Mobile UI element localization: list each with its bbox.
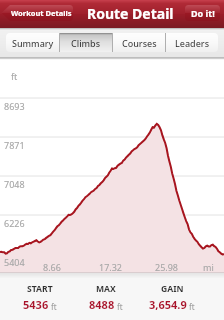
staticText: Do it! bbox=[191, 7, 215, 19]
staticText: mi bbox=[203, 261, 214, 273]
button[interactable]: MAX bbox=[73, 283, 139, 312]
staticText: Climbs bbox=[71, 37, 101, 49]
staticText: 25.98 bbox=[155, 261, 179, 273]
staticText: Leaders bbox=[175, 37, 210, 49]
staticText: GAIN bbox=[161, 283, 184, 295]
staticText: 8488 bbox=[89, 297, 115, 312]
staticText: 8.66 bbox=[43, 261, 61, 273]
staticText: Route Detail bbox=[87, 4, 174, 23]
button[interactable]: Summary bbox=[6, 33, 59, 52]
button[interactable]: Leaders bbox=[166, 33, 218, 52]
staticText: ft bbox=[115, 301, 123, 312]
button[interactable]: GAIN bbox=[139, 283, 205, 312]
staticText: 7871 bbox=[4, 139, 25, 151]
staticText: ft bbox=[11, 70, 18, 82]
button[interactable]: START bbox=[6, 283, 73, 312]
staticText: 5404 bbox=[4, 256, 25, 268]
staticText: Workout Details bbox=[11, 8, 72, 18]
staticText: Summary bbox=[12, 37, 54, 49]
button[interactable]: Climbs bbox=[60, 33, 112, 52]
staticText: MAX bbox=[96, 283, 116, 295]
staticText: 5436 bbox=[23, 297, 49, 312]
staticText: 8693 bbox=[4, 100, 25, 112]
staticText: 3,654.9 bbox=[149, 297, 187, 312]
staticText: ft bbox=[49, 301, 57, 312]
staticText: 17.32 bbox=[99, 261, 123, 273]
staticText: ft bbox=[187, 301, 195, 312]
button[interactable]: Workout Details bbox=[1, 5, 73, 21]
staticText: Courses bbox=[122, 37, 157, 49]
staticText: 6226 bbox=[4, 217, 25, 229]
staticText: 7048 bbox=[4, 178, 25, 190]
staticText: START bbox=[27, 283, 53, 295]
button[interactable]: Do it! bbox=[185, 5, 220, 21]
button[interactable]: Courses bbox=[113, 33, 165, 52]
